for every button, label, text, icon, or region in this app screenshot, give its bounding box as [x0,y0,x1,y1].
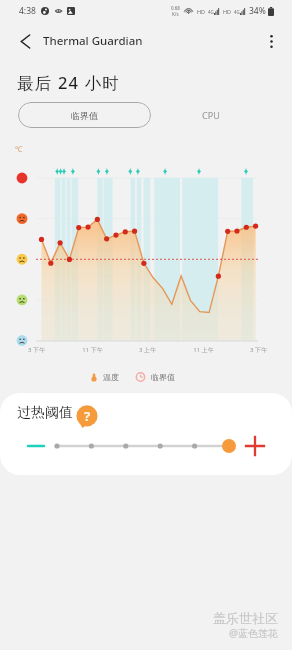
staticText: 34% [249,5,266,17]
staticText: 过热阈值 [17,404,73,422]
staticText: 3 下午 [28,346,45,354]
staticText: @蓝色莲花 [229,626,278,640]
staticText: Thermal Guardian [43,33,143,49]
button[interactable]: 临界值 [18,102,151,128]
staticText: 3 上午 [139,346,156,354]
staticText: 临界值 [151,372,175,382]
staticText: 临界值 [71,110,98,121]
staticText: ? [84,407,91,425]
button[interactable]: CPU [176,102,246,128]
button[interactable]: Help [76,406,98,428]
button[interactable]: Decrease [24,437,47,455]
staticText: CPU [202,109,220,121]
staticText: 最后 24 小时 [17,71,121,94]
staticText: HD [197,8,206,15]
staticText: 11 上午 [193,346,214,354]
staticText: 4G [208,9,214,15]
button[interactable]: More options [258,28,284,54]
staticText: 0.68 [171,5,180,11]
staticText: HD [223,8,232,15]
staticText: 盖乐世社区 [213,610,278,626]
staticText: 温度 [103,372,119,382]
staticText: 4:38 [19,5,36,17]
button[interactable]: Back [11,27,39,55]
staticText: K/s [172,11,179,17]
staticText: 11 下午 [82,346,103,354]
staticText: 3 下午 [250,346,267,354]
staticText: ℃ [15,144,23,154]
staticText: 4G [234,9,240,15]
button[interactable]: Increase [244,435,266,457]
button[interactable]: Threshold level [52,437,242,455]
